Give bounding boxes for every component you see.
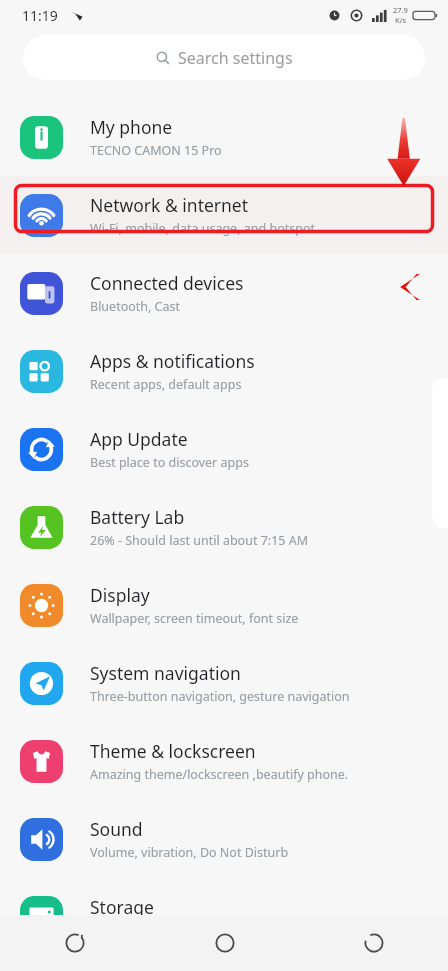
staticText: App Update	[90, 427, 188, 451]
staticText: Bluetooth, Cast	[90, 298, 181, 315]
staticText: Volume, vibration, Do Not Disturb	[90, 844, 289, 861]
staticText: Display	[90, 583, 150, 607]
staticText: Network & internet	[90, 193, 249, 217]
button[interactable]: Battery Lab	[0, 488, 448, 566]
button[interactable]: Apps & notifications	[0, 332, 448, 410]
staticText: 26% - Should last until about 7:15 AM	[90, 532, 309, 549]
staticText: Search settings	[178, 47, 293, 69]
button[interactable]: System navigation	[0, 644, 448, 722]
staticText: Apps & notifications	[90, 349, 255, 373]
button[interactable]: App Update	[0, 410, 448, 488]
button[interactable]: Network & internet	[0, 176, 448, 254]
staticText: K/s	[395, 15, 407, 25]
button[interactable]: Sound	[0, 800, 448, 878]
button[interactable]: Search settings	[23, 35, 425, 80]
staticText: Wallpaper, screen timeout, font size	[90, 610, 299, 627]
button[interactable]: Home	[150, 915, 299, 971]
button[interactable]: Storage	[0, 878, 448, 956]
staticText: Best place to discover apps	[90, 454, 249, 471]
staticText: Amazing theme/lockscreen ,beautify phone…	[90, 766, 349, 783]
button[interactable]: Display	[0, 566, 448, 644]
staticText: Theme & lockscreen	[90, 739, 256, 763]
staticText: Wi-Fi, mobile, data usage, and hotspot	[90, 220, 315, 237]
button[interactable]: Back	[299, 915, 448, 971]
staticText: Battery Lab	[90, 505, 185, 529]
staticText: 27.9	[393, 5, 408, 15]
staticText: 11:19	[22, 6, 58, 25]
button[interactable]: My phone	[0, 98, 448, 176]
staticText: Three-button navigation, gesture navigat…	[90, 688, 350, 705]
staticText: Sound	[90, 817, 143, 841]
button[interactable]: Theme & lockscreen	[0, 722, 448, 800]
staticText: Recent apps, default apps	[90, 376, 242, 393]
staticText: System navigation	[90, 661, 241, 685]
staticText: Storage	[90, 895, 154, 919]
staticText: My phone	[90, 115, 173, 139]
button[interactable]: Recent apps	[0, 915, 150, 971]
staticText: 26.98% used - 23.17 GB free	[90, 922, 254, 939]
staticText: TECNO CAMON 15 Pro	[90, 142, 222, 159]
staticText: Connected devices	[90, 271, 244, 295]
button[interactable]: Connected devices	[0, 254, 448, 332]
